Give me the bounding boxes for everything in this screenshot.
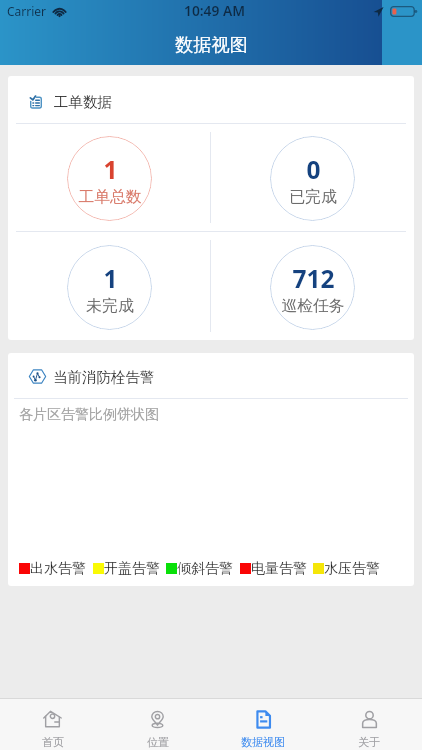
staticText: 1	[103, 153, 118, 186]
staticText: 工单总数	[78, 187, 142, 207]
staticText: 0	[306, 153, 321, 186]
staticText: 10:49 AM	[184, 1, 246, 20]
staticText: 各片区告警比例饼状图	[19, 406, 159, 424]
staticText: 当前消防栓告警	[53, 368, 155, 386]
staticText: 位置	[147, 735, 169, 749]
button[interactable]: 1	[8, 124, 210, 231]
button[interactable]: 关于	[316, 699, 422, 750]
staticText: 数据视图	[241, 735, 285, 749]
staticText: 电量告警	[251, 560, 307, 578]
button[interactable]: 1	[8, 232, 210, 340]
staticText: 出水告警	[30, 560, 86, 578]
staticText: 关于	[358, 735, 380, 749]
button[interactable]: 首页	[0, 699, 105, 750]
staticText: 1	[103, 262, 118, 295]
staticText: 开盖告警	[104, 560, 160, 578]
staticText: 数据视图	[175, 33, 248, 56]
button[interactable]: 数据视图	[210, 699, 316, 750]
staticText: 工单数据	[54, 93, 112, 111]
button[interactable]: 712	[211, 232, 414, 340]
staticText: 巡检任务	[281, 296, 345, 316]
staticText: Carrier	[7, 3, 47, 19]
button[interactable]: 位置	[105, 699, 210, 750]
button[interactable]: 0	[211, 124, 414, 231]
staticText: 712	[292, 262, 335, 295]
staticText: 水压告警	[324, 560, 380, 578]
staticText: 未完成	[86, 296, 134, 316]
staticText: 倾斜告警	[177, 560, 233, 578]
staticText: 已完成	[289, 187, 337, 207]
staticText: 首页	[42, 735, 64, 749]
